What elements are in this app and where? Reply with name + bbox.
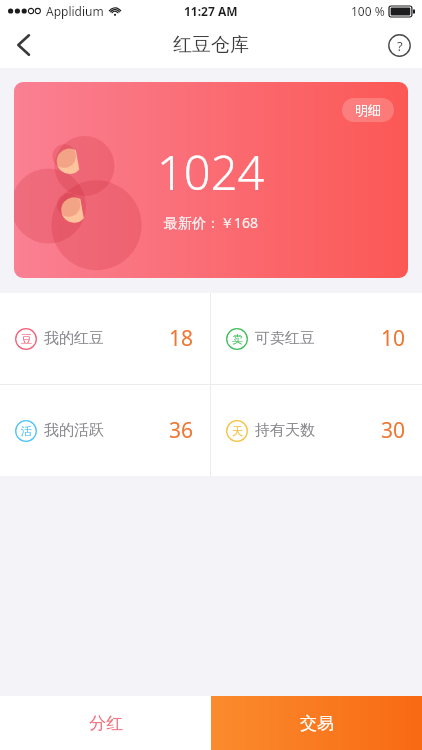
- button[interactable]: Help: [376, 22, 422, 68]
- staticText: 分红: [89, 713, 123, 734]
- staticText: 豆: [21, 332, 32, 346]
- staticText: 天: [232, 424, 243, 438]
- button[interactable]: 明细: [14, 82, 408, 278]
- button[interactable]: 交易: [211, 696, 422, 750]
- staticText: 10: [381, 324, 406, 353]
- staticText: 11:27 AM: [184, 3, 238, 19]
- button[interactable]: Back: [0, 22, 46, 68]
- staticText: 红豆仓库: [173, 33, 249, 57]
- staticText: 100 %: [351, 3, 385, 19]
- staticText: Applidium: [46, 3, 104, 19]
- button[interactable]: 分红: [0, 696, 211, 750]
- staticText: 交易: [300, 713, 334, 734]
- staticText: 最新价：￥168: [164, 213, 259, 232]
- staticText: 活: [21, 424, 32, 438]
- staticText: 我的活跃: [44, 421, 104, 440]
- staticText: 卖: [232, 332, 243, 346]
- staticText: 1024: [157, 140, 265, 204]
- staticText: 30: [381, 416, 406, 445]
- staticText: ?: [397, 37, 403, 55]
- staticText: 持有天数: [255, 421, 315, 440]
- button[interactable]: 卖: [211, 293, 422, 384]
- staticText: 18: [169, 324, 194, 353]
- button[interactable]: 活: [0, 385, 210, 476]
- staticText: 明细: [355, 102, 381, 118]
- button[interactable]: 明细: [342, 98, 394, 122]
- staticText: 36: [169, 416, 194, 445]
- staticText: 可卖红豆: [255, 329, 315, 348]
- staticText: 我的红豆: [44, 329, 104, 348]
- button[interactable]: 豆: [0, 293, 210, 384]
- button[interactable]: 天: [211, 385, 422, 476]
